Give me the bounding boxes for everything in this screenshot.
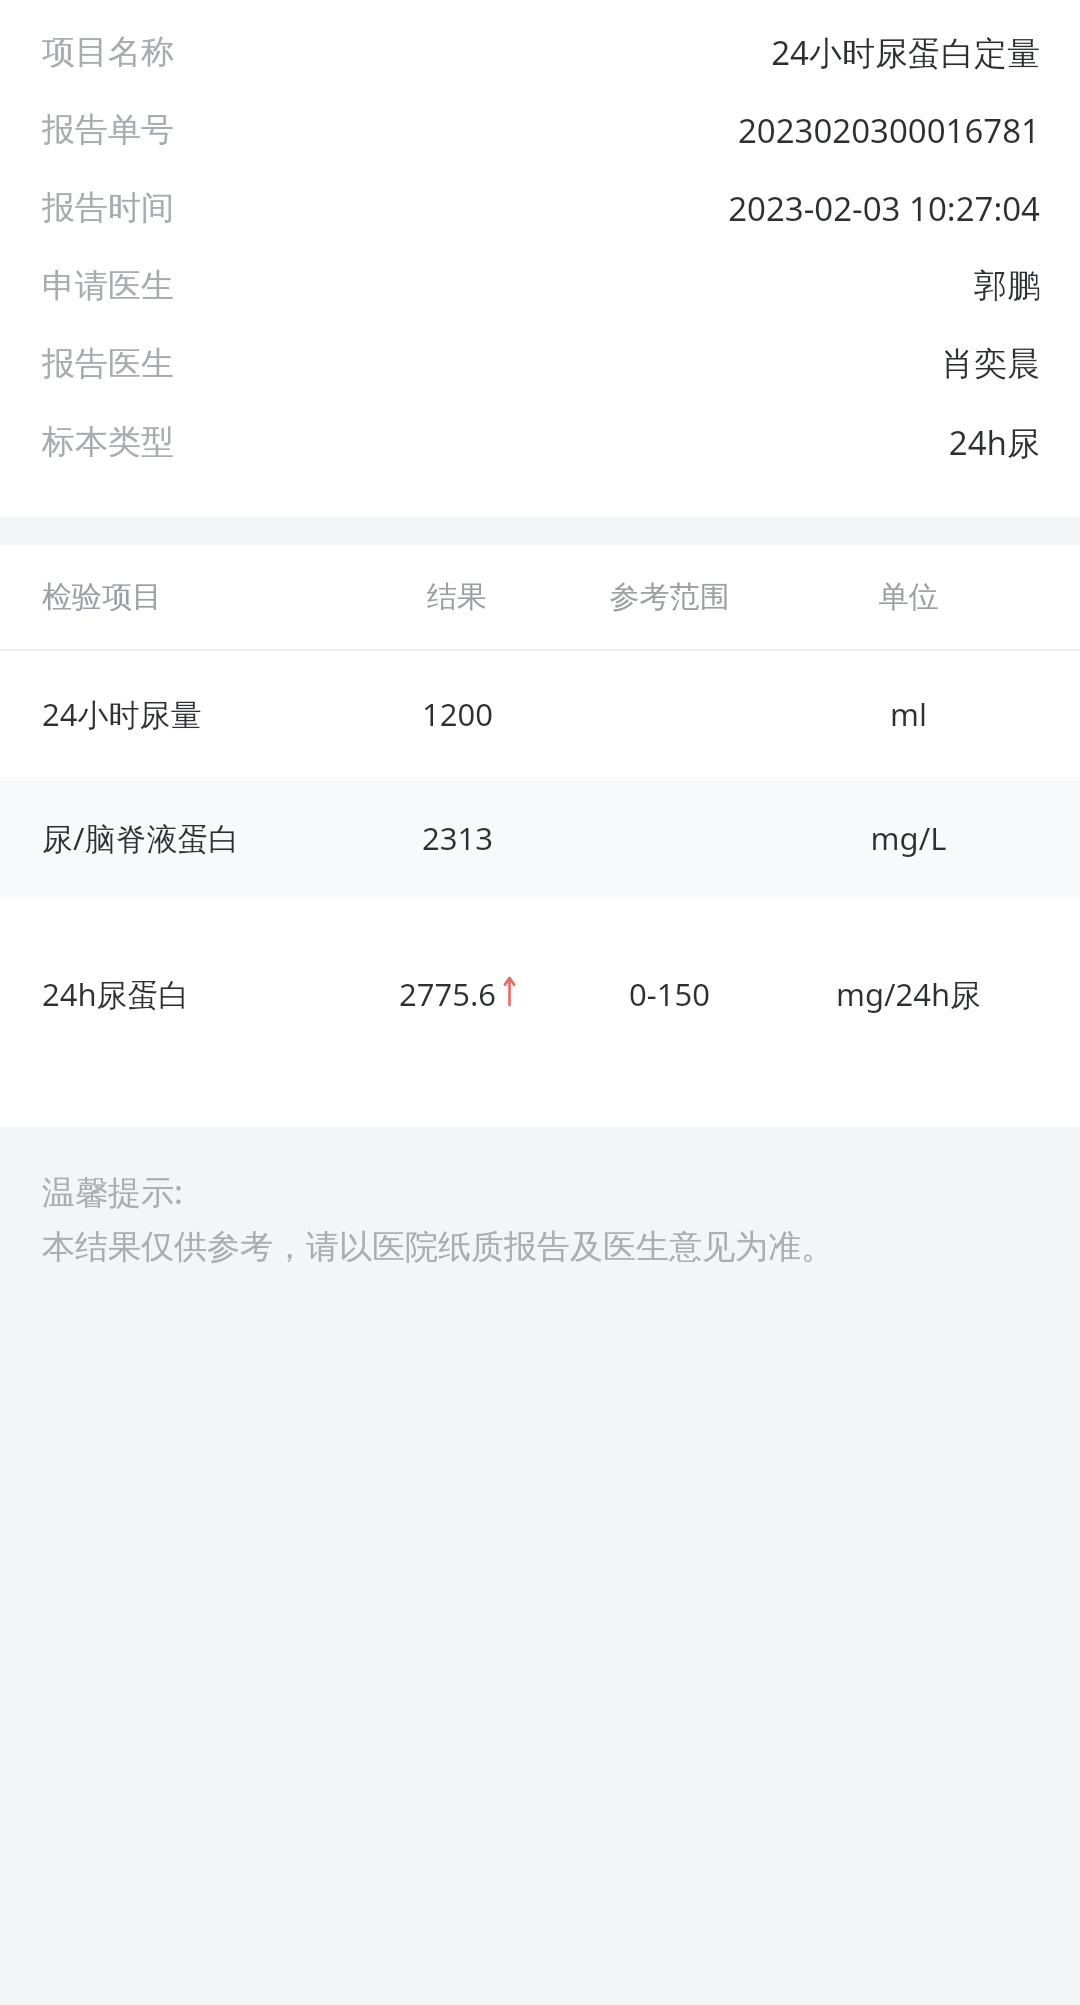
staticText: 24h尿: [948, 420, 1040, 465]
staticText: mg/24h尿: [777, 973, 1040, 1015]
staticText: 2775.6: [399, 973, 496, 1015]
button[interactable]: 项目名称: [0, 13, 1080, 91]
staticText: 检验项目: [42, 578, 352, 616]
staticText: 单位: [777, 578, 1040, 616]
staticText: 温馨提示:: [42, 1169, 183, 1214]
staticText: 24小时尿量: [42, 693, 352, 735]
staticText: ml: [777, 693, 1040, 735]
button[interactable]: 申请医生: [0, 247, 1080, 325]
staticText: 报告时间: [42, 187, 174, 229]
staticText: 2023-02-03 10:27:04: [728, 186, 1040, 231]
button[interactable]: 报告单号: [0, 91, 1080, 169]
staticText: 0-150: [562, 973, 777, 1015]
button[interactable]: 标本类型: [0, 403, 1080, 481]
button[interactable]: 尿/脑脊液蛋白: [0, 777, 1080, 899]
staticText: 项目名称: [42, 31, 174, 73]
button[interactable]: 24小时尿量: [0, 651, 1080, 777]
staticText: 本结果仅供参考，请以医院纸质报告及医生意见为准。: [42, 1226, 834, 1268]
staticText: 2313: [422, 817, 493, 859]
button[interactable]: 报告时间: [0, 169, 1080, 247]
staticText: 申请医生: [42, 265, 174, 307]
staticText: 2023020300016781: [737, 108, 1040, 153]
staticText: 郭鹏: [974, 265, 1040, 307]
staticText: 参考范围: [562, 578, 777, 616]
button[interactable]: 24h尿蛋白: [0, 899, 1080, 1089]
staticText: mg/L: [777, 817, 1040, 859]
staticText: 报告单号: [42, 109, 174, 151]
staticText: 结果: [352, 578, 562, 616]
staticText: 24小时尿蛋白定量: [771, 30, 1040, 75]
staticText: 报告医生: [42, 343, 174, 385]
staticText: 标本类型: [42, 421, 174, 463]
staticText: 尿/脑脊液蛋白: [42, 817, 352, 859]
button[interactable]: 报告医生: [0, 325, 1080, 403]
staticText: 1200: [422, 693, 493, 735]
staticText: 肖奕晨: [941, 343, 1040, 385]
staticText: 24h尿蛋白: [42, 973, 352, 1015]
